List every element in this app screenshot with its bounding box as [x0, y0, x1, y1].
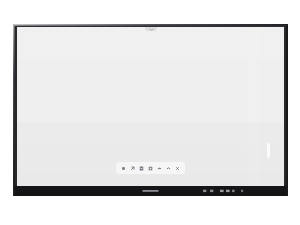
- button[interactable]: Open quick panel: [145, 27, 157, 31]
- button[interactable]: Undo: [155, 164, 164, 172]
- button[interactable]: Redo: [164, 164, 173, 172]
- button[interactable]: Menu: [119, 164, 128, 172]
- button[interactable]: Save note: [137, 164, 146, 172]
- button[interactable]: Interactive display: [13, 24, 288, 196]
- button[interactable]: Share screen: [128, 164, 137, 172]
- button[interactable]: Close: [173, 164, 182, 172]
- button[interactable]: New page: [146, 164, 155, 172]
